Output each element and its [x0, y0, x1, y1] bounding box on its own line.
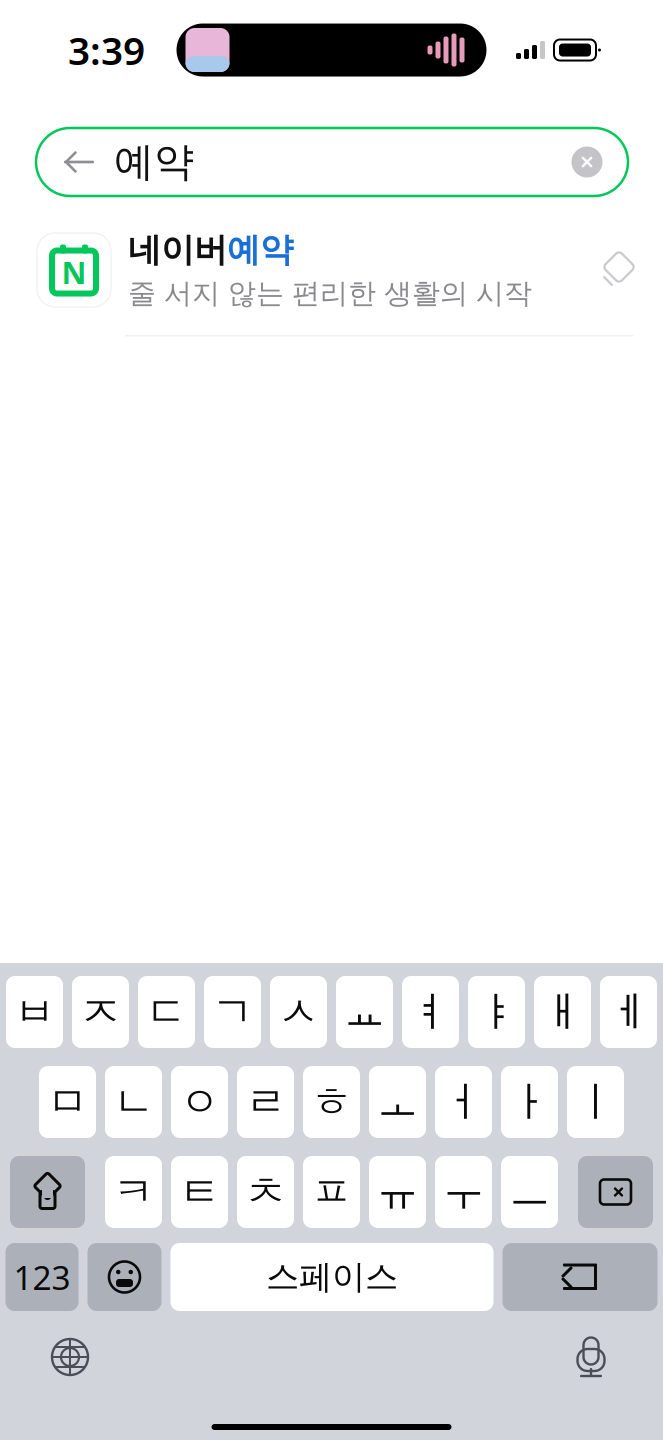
button[interactable]: ㅠ: [369, 1156, 426, 1228]
button[interactable]: Emoji: [87, 1243, 161, 1311]
staticText: 스페이스: [266, 1256, 398, 1297]
button[interactable]: ㅑ: [468, 976, 525, 1048]
button[interactable]: ㅇ: [171, 1066, 228, 1138]
button[interactable]: 스페이스: [170, 1243, 493, 1311]
staticText: ㅋ: [113, 1167, 154, 1217]
staticText: ㅗ: [377, 1077, 418, 1127]
staticText: 줄 서지 않는 편리한 생활의 시작: [128, 276, 532, 311]
staticText: ㅓ: [443, 1077, 484, 1127]
button[interactable]: ㅓ: [435, 1066, 492, 1138]
button[interactable]: ㅣ: [567, 1066, 624, 1138]
staticText: ㅈ: [80, 987, 121, 1037]
staticText: ㅠ: [377, 1167, 418, 1217]
staticText: ㅐ: [542, 987, 583, 1037]
button[interactable]: ㅎ: [303, 1066, 360, 1138]
button[interactable]: ㅊ: [237, 1156, 294, 1228]
button[interactable]: 123: [5, 1243, 78, 1311]
staticText: ㅣ: [575, 1077, 616, 1127]
staticText: 예약: [114, 137, 194, 186]
button[interactable]: ㅂ: [6, 976, 63, 1048]
staticText: ㄷ: [146, 987, 187, 1037]
staticText: 네이버: [128, 229, 227, 270]
button[interactable]: ㅈ: [72, 976, 129, 1048]
button[interactable]: ㅍ: [303, 1156, 360, 1228]
staticText: ㅡ: [509, 1167, 550, 1217]
button[interactable]: ㅛ: [336, 976, 393, 1048]
button[interactable]: Back: [50, 133, 108, 191]
button[interactable]: ㄹ: [237, 1066, 294, 1138]
button[interactable]: ㅔ: [600, 976, 657, 1048]
button[interactable]: ㅏ: [501, 1066, 558, 1138]
button[interactable]: Delete: [578, 1156, 653, 1228]
button[interactable]: ㅗ: [369, 1066, 426, 1138]
button[interactable]: ㅡ: [501, 1156, 558, 1228]
staticText: ㅇ: [179, 1077, 220, 1127]
staticText: ㅁ: [47, 1077, 88, 1127]
staticText: ㅎ: [311, 1077, 352, 1127]
staticText: ㅏ: [509, 1077, 550, 1127]
staticText: ㅌ: [179, 1167, 220, 1217]
staticText: 예약: [227, 229, 293, 270]
staticText: ㄴ: [113, 1077, 154, 1127]
button[interactable]: Clear text: [558, 133, 616, 191]
button[interactable]: ㅜ: [435, 1156, 492, 1228]
button[interactable]: ㄱ: [204, 976, 261, 1048]
button[interactable]: ㄷ: [138, 976, 195, 1048]
staticText: ㅍ: [311, 1167, 352, 1217]
button[interactable]: N: [0, 222, 663, 336]
staticText: ㅔ: [608, 987, 649, 1037]
button[interactable]: ㅕ: [402, 976, 459, 1048]
staticText: ㅂ: [14, 987, 55, 1037]
staticText: ㅛ: [344, 987, 385, 1037]
button[interactable]: ㄴ: [105, 1066, 162, 1138]
button[interactable]: ㅋ: [105, 1156, 162, 1228]
staticText: N: [61, 252, 86, 292]
staticText: 3:39: [68, 24, 145, 76]
button[interactable]: ㅁ: [39, 1066, 96, 1138]
staticText: ㅅ: [278, 987, 319, 1037]
staticText: ㅊ: [245, 1167, 286, 1217]
staticText: ㅕ: [410, 987, 451, 1037]
button[interactable]: Dictation: [559, 1325, 623, 1389]
staticText: ㅜ: [443, 1167, 484, 1217]
button[interactable]: Shift: [10, 1156, 85, 1228]
staticText: ㄹ: [245, 1077, 286, 1127]
button[interactable]: Return: [502, 1243, 657, 1311]
staticText: ㄱ: [212, 987, 253, 1037]
staticText: ㅑ: [476, 987, 517, 1037]
button[interactable]: ㅅ: [270, 976, 327, 1048]
button[interactable]: ㅌ: [171, 1156, 228, 1228]
staticText: 123: [13, 1255, 70, 1299]
button[interactable]: ㅐ: [534, 976, 591, 1048]
button[interactable]: Switch keyboard: [38, 1325, 102, 1389]
